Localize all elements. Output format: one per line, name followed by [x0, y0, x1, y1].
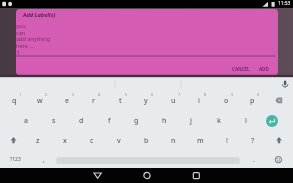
staticText: b: [144, 136, 149, 146]
staticText: t: [119, 96, 122, 106]
staticText: h: [162, 116, 167, 126]
staticText: 8: [204, 92, 207, 97]
staticText: j: [190, 116, 192, 126]
button[interactable]: n: [160, 131, 186, 150]
button[interactable]: ADD: [254, 62, 274, 75]
staticText: 2: [45, 92, 48, 97]
button[interactable]: ,: [31, 150, 57, 169]
staticText: add anything: [16, 35, 51, 42]
button[interactable]: y: [133, 91, 159, 110]
staticText: q: [12, 96, 17, 106]
button[interactable]: p: [239, 91, 265, 110]
button[interactable]: !: [214, 131, 240, 150]
staticText: e: [65, 96, 70, 106]
staticText: can: [16, 29, 26, 36]
staticText: 1: [19, 92, 22, 97]
button[interactable]: h: [151, 111, 177, 130]
staticText: x: [63, 136, 67, 146]
staticText: y: [144, 96, 148, 106]
button[interactable]: CANCEL: [228, 62, 253, 75]
button[interactable]: g: [123, 111, 149, 130]
staticText: u: [171, 96, 176, 106]
staticText: 5: [125, 92, 128, 97]
staticText: v: [117, 136, 121, 146]
staticText: k: [217, 116, 221, 126]
staticText: m: [197, 136, 204, 146]
staticText: ,: [43, 155, 45, 164]
staticText: p: [250, 96, 255, 106]
staticText: here ...: [16, 42, 34, 49]
button[interactable]: q: [1, 91, 27, 110]
staticText: z: [36, 136, 40, 146]
staticText: .: [253, 155, 255, 164]
staticText: CANCEL: [232, 66, 250, 72]
staticText: a: [24, 116, 29, 126]
staticText: n: [171, 136, 176, 146]
button[interactable]: d: [68, 111, 94, 130]
staticText: 6: [151, 92, 154, 97]
staticText: d: [79, 116, 84, 126]
staticText: 4: [98, 92, 101, 97]
button[interactable]: a: [13, 111, 39, 130]
button[interactable]: [137, 167, 157, 183]
staticText: 0: [257, 92, 260, 97]
staticText: 7: [178, 92, 181, 97]
staticText: r: [92, 96, 95, 106]
staticText: !: [226, 136, 228, 146]
staticText: g: [134, 116, 139, 126]
staticText: :): [16, 48, 20, 55]
button[interactable]: x: [52, 131, 78, 150]
button[interactable]: k: [206, 111, 232, 130]
button[interactable]: f: [96, 111, 122, 130]
staticText: w: [37, 96, 43, 106]
staticText: 3: [72, 92, 75, 97]
staticText: f: [108, 116, 111, 126]
staticText: 11:53: [278, 0, 291, 7]
staticText: i: [198, 96, 200, 106]
staticText: s: [52, 116, 56, 126]
button[interactable]: z: [25, 131, 51, 150]
button[interactable]: s: [41, 111, 67, 130]
staticText: Add Label(s): [23, 11, 56, 19]
button[interactable]: t: [107, 91, 133, 110]
button[interactable]: ?: [240, 131, 266, 150]
button[interactable]: i: [186, 91, 212, 110]
button[interactable]: b: [133, 131, 159, 150]
staticText: you: [16, 22, 26, 29]
staticText: ?123: [10, 156, 21, 163]
button[interactable]: o: [213, 91, 239, 110]
staticText: c: [90, 136, 94, 146]
staticText: o: [224, 96, 229, 106]
button[interactable]: .: [241, 150, 267, 169]
button[interactable]: v: [106, 131, 132, 150]
button[interactable]: ?123: [2, 150, 28, 169]
button[interactable]: j: [178, 111, 204, 130]
button[interactable]: e: [54, 91, 80, 110]
button[interactable]: c: [79, 131, 105, 150]
button[interactable]: l: [233, 111, 259, 130]
button[interactable]: [186, 167, 206, 183]
staticText: 9: [231, 92, 234, 97]
button[interactable]: u: [160, 91, 186, 110]
button[interactable]: [88, 167, 108, 183]
button[interactable]: w: [27, 91, 53, 110]
button[interactable]: m: [187, 131, 213, 150]
button[interactable]: r: [80, 91, 106, 110]
staticText: ?: [251, 136, 255, 146]
staticText: ADD: [259, 66, 269, 72]
staticText: l: [245, 116, 247, 126]
